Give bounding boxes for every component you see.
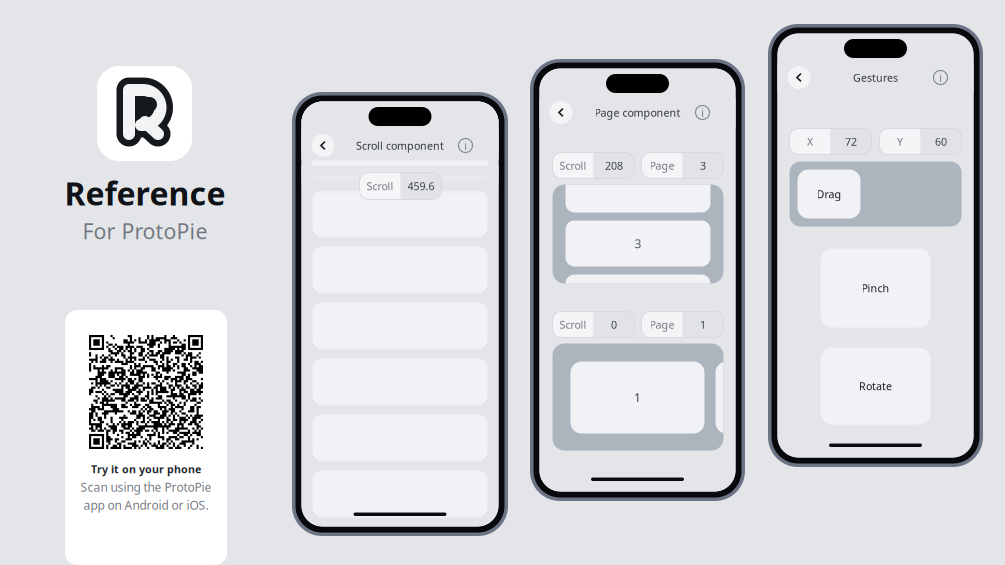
button[interactable]: Info xyxy=(455,135,475,155)
button[interactable]: Page xyxy=(641,152,723,178)
staticText: 3 xyxy=(634,235,641,251)
staticText: Scan using the ProtoPie xyxy=(80,479,211,495)
staticText: 3 xyxy=(700,158,706,173)
staticText: Scroll xyxy=(366,179,393,193)
staticText: 72 xyxy=(845,134,857,149)
button[interactable]: Scroll xyxy=(359,172,441,199)
button[interactable]: Scroll xyxy=(552,152,634,178)
staticText: Scroll component xyxy=(356,138,444,153)
staticText: Y xyxy=(897,134,903,149)
button[interactable]: Info xyxy=(930,67,950,87)
staticText: Gestures xyxy=(853,70,898,85)
staticText: Page xyxy=(649,317,674,332)
button[interactable]: Back xyxy=(549,101,572,124)
staticText: app on Android or iOS. xyxy=(83,497,208,513)
button[interactable]: Back xyxy=(311,134,334,157)
staticText: 1 xyxy=(634,389,641,405)
staticText: Page component xyxy=(594,105,680,120)
staticText: For ProtoPie xyxy=(82,217,207,245)
staticText: 1 xyxy=(700,317,706,332)
button[interactable]: Info xyxy=(692,102,712,122)
button[interactable]: Scroll xyxy=(552,311,634,337)
staticText: 0 xyxy=(611,317,617,332)
staticText: 459.6 xyxy=(407,179,434,193)
staticText: Page xyxy=(649,158,674,173)
staticText: i xyxy=(701,104,704,120)
staticText: Scroll xyxy=(559,317,586,332)
staticText: i xyxy=(939,69,942,85)
button[interactable]: Rotate xyxy=(820,347,930,424)
staticText: Reference xyxy=(64,172,225,214)
staticText: Pinch xyxy=(861,281,889,295)
button[interactable]: Pinch xyxy=(820,248,930,327)
button[interactable]: Drag xyxy=(797,169,860,218)
button[interactable]: X xyxy=(789,128,871,154)
staticText: Rotate xyxy=(859,379,892,393)
button[interactable]: Page xyxy=(641,311,723,337)
staticText: X xyxy=(807,134,813,149)
button[interactable]: Y xyxy=(879,128,961,154)
staticText: 60 xyxy=(935,134,947,149)
staticText: Try it on your phone xyxy=(91,462,201,476)
staticText: 208 xyxy=(605,158,623,173)
button[interactable]: Back xyxy=(787,66,810,89)
staticText: Scroll xyxy=(559,158,586,173)
staticText: i xyxy=(464,137,467,153)
staticText: Drag xyxy=(816,187,841,201)
